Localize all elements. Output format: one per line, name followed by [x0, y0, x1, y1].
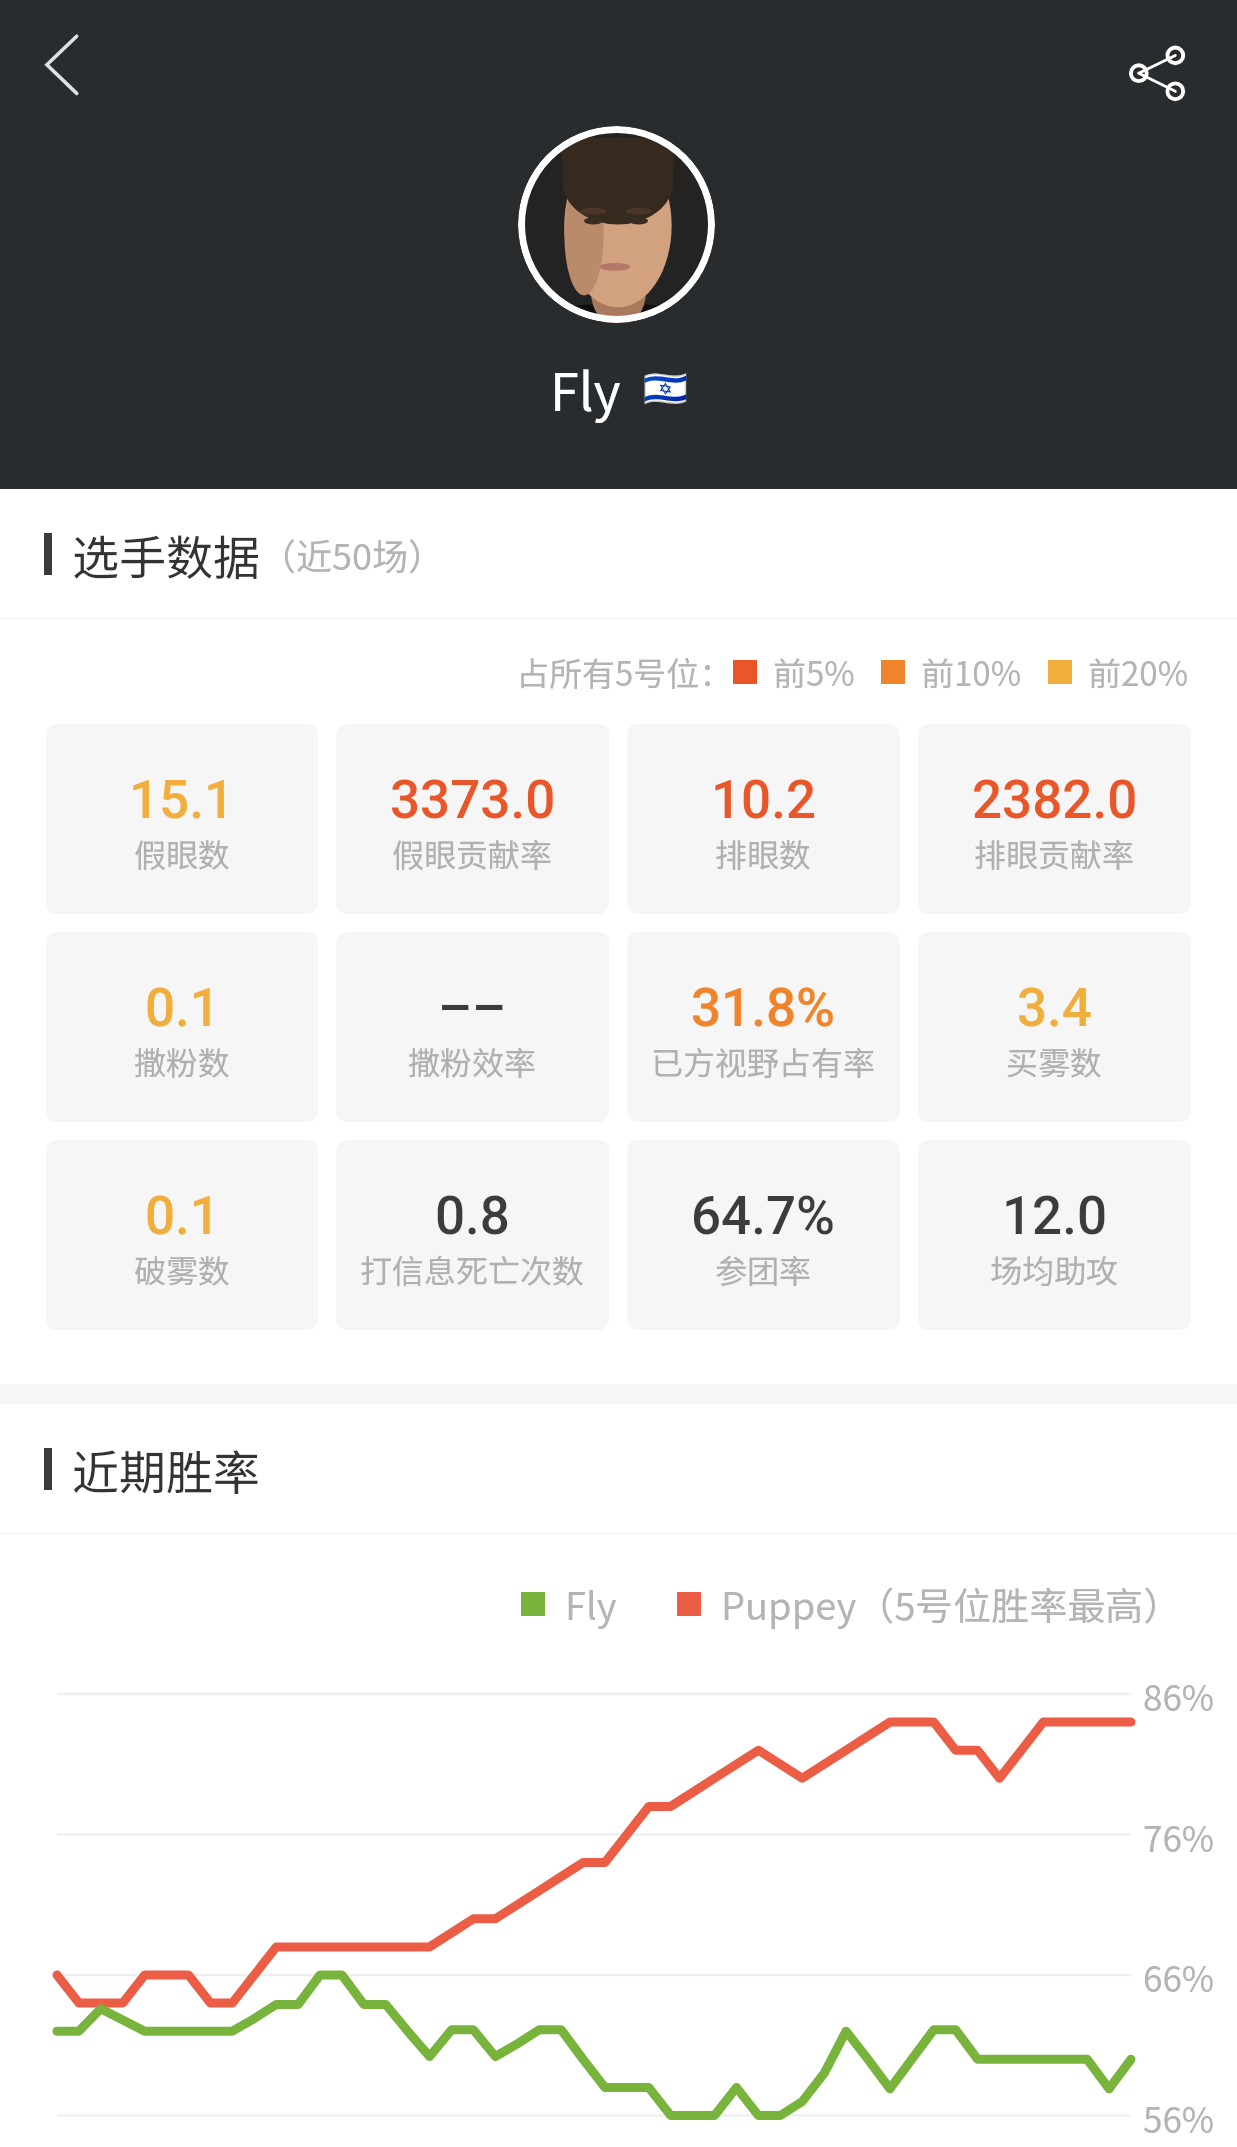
button[interactable]: 3.4: [918, 932, 1191, 1122]
staticText: 排眼贡献率: [974, 830, 1135, 876]
staticText: 3.4: [1017, 977, 1092, 1039]
staticText: 打信息死亡次数: [360, 1246, 585, 1292]
staticText: 假眼数: [134, 830, 231, 876]
staticText: 86%: [1143, 1670, 1215, 1721]
staticText: ––: [438, 977, 507, 1039]
button[interactable]: Player avatar: [518, 126, 715, 323]
staticText: 假眼贡献率: [392, 830, 553, 876]
staticText: 0.8: [435, 1185, 510, 1247]
staticText: 31.8%: [691, 977, 836, 1039]
staticText: Puppey（5号位胜率最高）: [721, 1576, 1182, 1631]
button[interactable]: Back: [32, 21, 92, 81]
staticText: 撒粉效率: [408, 1038, 537, 1084]
staticText: Fly: [565, 1576, 617, 1631]
staticText: 破雾数: [134, 1246, 231, 1292]
staticText: 撒粉数: [134, 1038, 231, 1084]
button[interactable]: ––: [336, 932, 609, 1122]
staticText: 近期胜率: [72, 1435, 260, 1503]
staticText: 前10%: [921, 648, 1022, 696]
staticText: Fly: [550, 351, 621, 426]
staticText: 2382.0: [972, 769, 1138, 831]
staticText: 0.1: [145, 1185, 220, 1247]
staticText: 76%: [1143, 1811, 1215, 1862]
staticText: 选手数据: [72, 520, 260, 588]
staticText: 64.7%: [691, 1185, 836, 1247]
staticText: （近50场）: [260, 528, 444, 580]
staticText: 前20%: [1088, 648, 1189, 696]
button[interactable]: 31.8%: [627, 932, 900, 1122]
button[interactable]: 0.8: [336, 1140, 609, 1330]
staticText: 66%: [1143, 1951, 1215, 2002]
staticText: 15.1: [129, 769, 235, 831]
button[interactable]: 0.1: [46, 1140, 318, 1330]
button[interactable]: 0.1: [46, 932, 318, 1122]
staticText: 买雾数: [1006, 1038, 1103, 1084]
staticText: 3373.0: [390, 769, 556, 831]
staticText: 0.1: [145, 977, 220, 1039]
staticText: 已方视野占有率: [651, 1038, 876, 1084]
staticText: 12.0: [1002, 1185, 1108, 1247]
staticText: 🇮🇱: [643, 368, 688, 410]
staticText: 10.2: [711, 769, 817, 831]
button[interactable]: 64.7%: [627, 1140, 900, 1330]
button[interactable]: 15.1: [46, 724, 318, 914]
staticText: 前5%: [773, 648, 855, 696]
button[interactable]: Share: [1121, 37, 1193, 109]
button[interactable]: 10.2: [627, 724, 900, 914]
button[interactable]: 3373.0: [336, 724, 609, 914]
staticText: 占所有5号位：: [516, 648, 733, 696]
staticText: 参团率: [715, 1246, 812, 1292]
button[interactable]: 12.0: [918, 1140, 1191, 1330]
button[interactable]: 2382.0: [918, 724, 1191, 914]
staticText: 56%: [1143, 2092, 1215, 2143]
staticText: 场均助攻: [990, 1246, 1119, 1292]
staticText: 排眼数: [715, 830, 812, 876]
